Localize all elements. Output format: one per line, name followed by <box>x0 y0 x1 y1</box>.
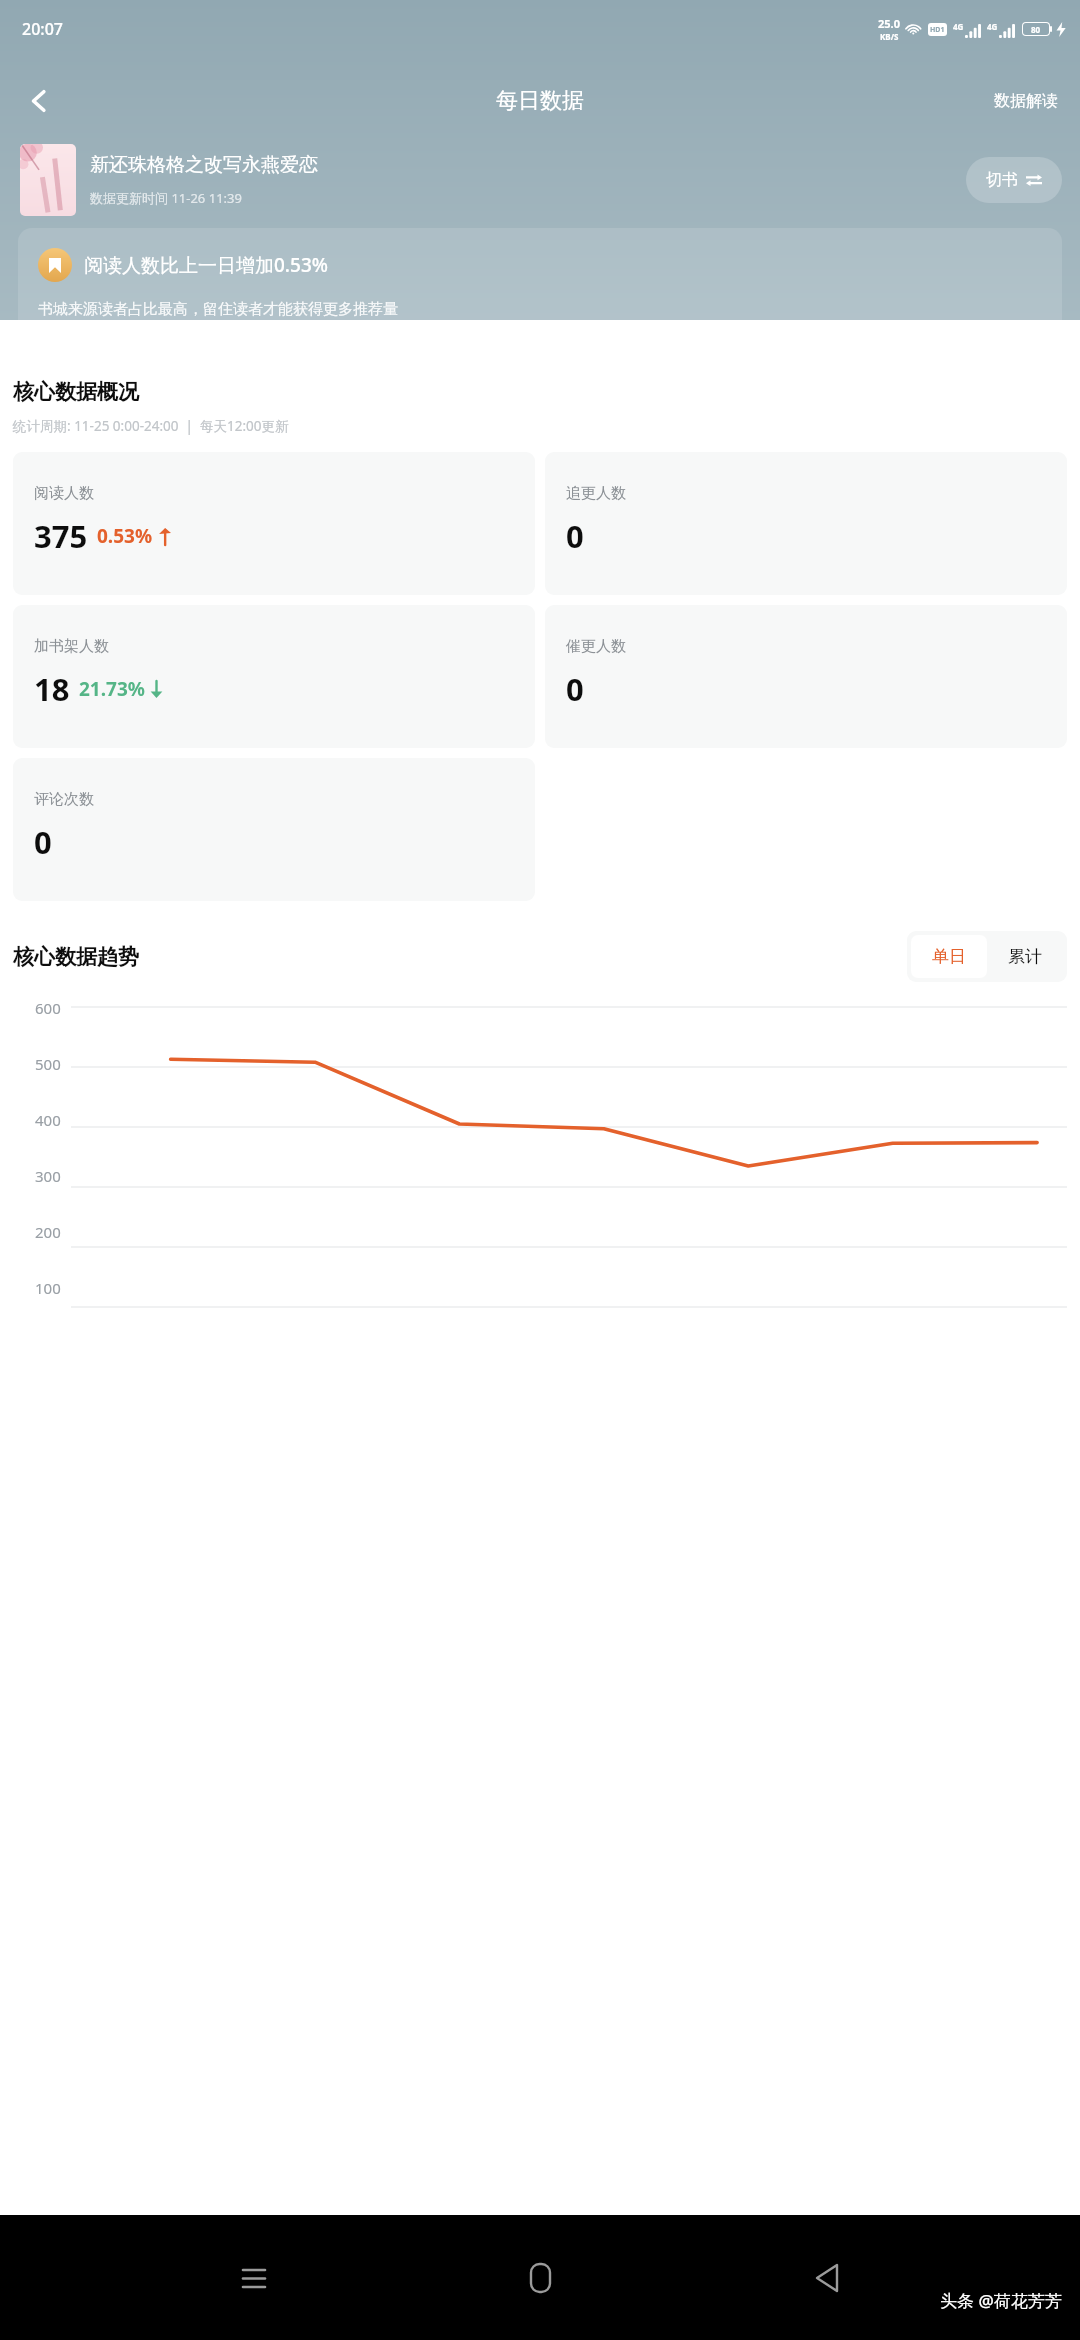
button[interactable]: 阅读人数 <box>13 452 535 595</box>
button[interactable]: 催更人数 <box>545 605 1067 748</box>
staticText: 200 <box>35 1222 61 1242</box>
staticText: 500 <box>35 1054 61 1074</box>
button[interactable]: 追更人数 <box>545 452 1067 595</box>
staticText: 21.73% <box>79 676 145 702</box>
staticText: 书城来源读者占比最高，留住读者才能获得更多推荐量 <box>38 300 398 319</box>
staticText: 核心数据趋势 <box>13 944 139 970</box>
button[interactable]: Recents <box>221 2245 287 2311</box>
staticText: HD1 <box>930 25 945 35</box>
button[interactable]: 累计 <box>987 935 1063 978</box>
staticText: 加书架人数 <box>34 637 109 656</box>
staticText: 新还珠格格之改写永燕爱恋 <box>90 153 318 177</box>
staticText: 20:07 <box>22 18 63 40</box>
staticText: 0 <box>566 668 584 710</box>
staticText: 0 <box>566 515 584 557</box>
staticText: 300 <box>35 1166 61 1186</box>
staticText: 4G <box>953 21 964 32</box>
button[interactable]: Back <box>794 2245 860 2311</box>
button[interactable]: 数据解读 <box>988 81 1064 121</box>
staticText: 阅读人数 <box>34 484 94 503</box>
staticText: 600 <box>35 998 61 1018</box>
staticText: 100 <box>35 1278 61 1298</box>
staticText: 催更人数 <box>566 637 626 656</box>
staticText: 数据更新时间 11-26 11:39 <box>90 189 242 207</box>
staticText: 切书 <box>986 170 1018 190</box>
staticText: 单日 <box>932 946 966 967</box>
staticText: 核心数据概况 <box>13 379 139 405</box>
staticText: 每日数据 <box>496 87 584 115</box>
button[interactable]: 评论次数 <box>13 758 535 901</box>
button[interactable]: 阅读人数比上一日增加0.53% <box>18 228 1062 339</box>
staticText: 400 <box>35 1110 61 1130</box>
staticText: 统计周期: 11-25 0:00-24:00 | 每天12:00更新 <box>13 417 289 435</box>
staticText: 阅读人数比上一日增加0.53% <box>84 252 328 278</box>
button[interactable]: 单日 <box>911 935 987 978</box>
staticText: 数据解读 <box>994 91 1058 111</box>
staticText: 0 <box>34 821 52 863</box>
staticText: 375 <box>34 515 88 557</box>
staticText: KB/S <box>880 31 899 42</box>
staticText: 4G <box>987 21 998 32</box>
staticText: 头条 @荷花芳芳 <box>940 2289 1062 2312</box>
staticText: 18 <box>34 668 70 710</box>
button[interactable]: 加书架人数 <box>13 605 535 748</box>
staticText: 25.0 <box>878 16 900 31</box>
staticText: 追更人数 <box>566 484 626 503</box>
button[interactable]: Back <box>10 72 68 130</box>
staticText: 80 <box>1031 24 1041 35</box>
staticText: 评论次数 <box>34 790 94 809</box>
staticText: 0.53% <box>97 523 153 549</box>
button[interactable]: 切书 <box>966 157 1062 203</box>
staticText: 累计 <box>1008 946 1042 967</box>
button[interactable]: Home <box>507 2245 573 2311</box>
